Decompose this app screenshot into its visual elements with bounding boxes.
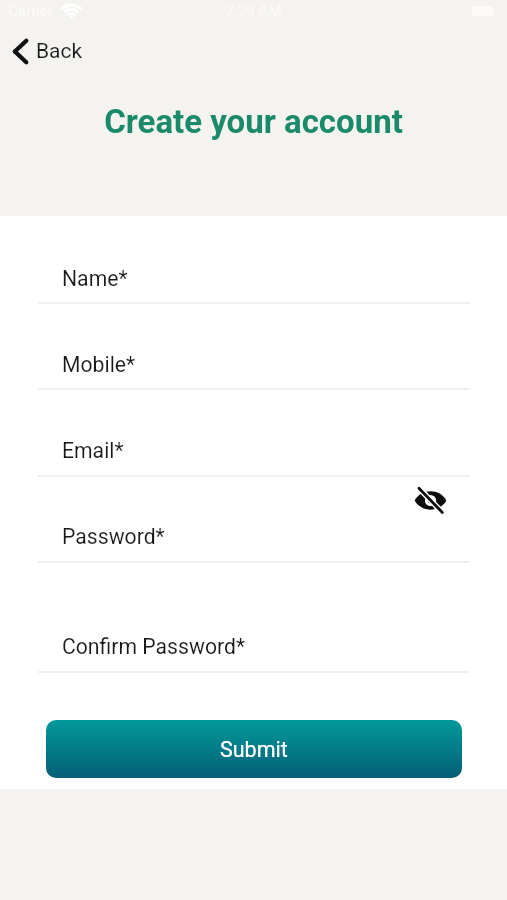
staticText: Submit <box>220 737 288 762</box>
button[interactable]: Name* <box>38 244 470 304</box>
staticText: Create your account <box>104 102 403 141</box>
button[interactable]: Mobile* <box>38 330 470 390</box>
button[interactable]: Submit <box>46 720 462 778</box>
staticText: Name* <box>62 266 128 291</box>
button[interactable]: Email* <box>38 416 470 477</box>
staticText: Password* <box>62 524 165 549</box>
button[interactable]: Show password <box>406 476 454 524</box>
staticText: Confirm Password* <box>62 634 246 659</box>
button[interactable]: Confirm Password* <box>38 612 470 673</box>
staticText: Mobile* <box>62 352 136 377</box>
staticText: Back <box>36 39 83 64</box>
button[interactable]: Password* <box>38 502 470 563</box>
button[interactable]: Back <box>4 32 91 71</box>
staticText: Email* <box>62 438 124 463</box>
